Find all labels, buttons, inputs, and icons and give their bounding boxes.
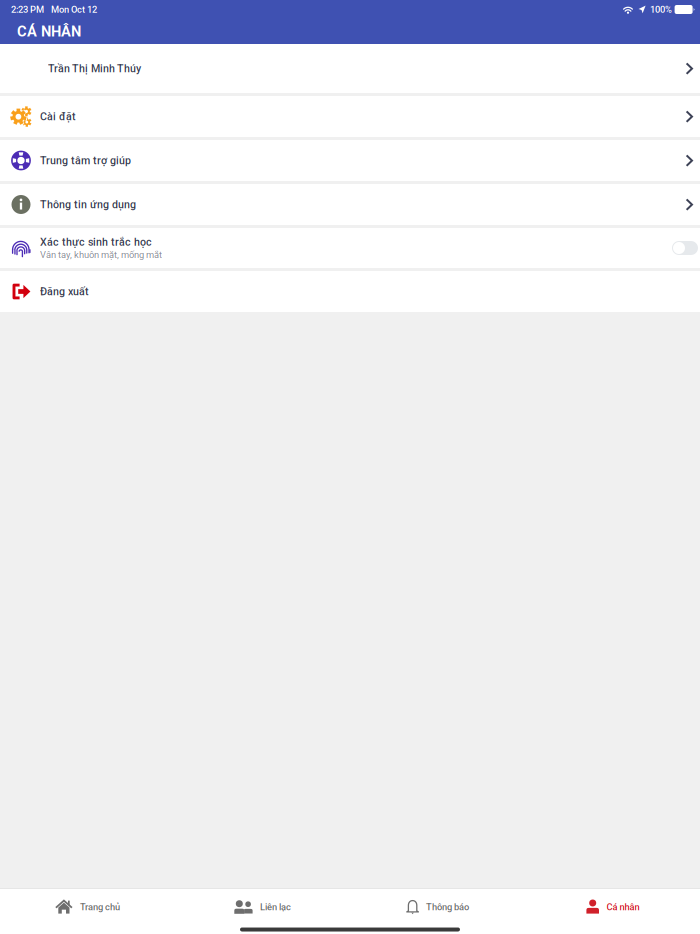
staticText: Vân tay, khuôn mặt, mống mắt: [40, 249, 162, 260]
staticText: Cài đặt: [40, 110, 76, 123]
staticText: Cá nhân: [606, 901, 639, 912]
button[interactable]: Trần Thị Minh Thúy: [0, 44, 700, 93]
button[interactable]: Trung tâm trợ giúp: [0, 140, 700, 181]
staticText: CÁ NHÂN: [17, 23, 81, 40]
button[interactable]: Trang chủ: [0, 889, 175, 925]
staticText: Liên lạc: [260, 901, 291, 912]
button[interactable]: Liên lạc: [175, 889, 350, 925]
button[interactable]: Xác thực sinh trắc học: [0, 228, 700, 268]
staticText: Xác thực sinh trắc học: [40, 236, 152, 248]
staticText: 100%: [650, 4, 672, 15]
button[interactable]: Cá nhân: [525, 889, 700, 925]
staticText: Thông báo: [426, 901, 469, 912]
staticText: Mon Oct 12: [51, 4, 97, 15]
button[interactable]: Thông báo: [350, 889, 525, 925]
staticText: Đăng xuất: [40, 285, 89, 298]
button[interactable]: Cài đặt: [0, 96, 700, 137]
button[interactable]: Đăng xuất: [0, 271, 700, 312]
staticText: Trang chủ: [80, 901, 120, 912]
staticText: Trần Thị Minh Thúy: [48, 62, 141, 75]
staticText: Trung tâm trợ giúp: [40, 154, 131, 167]
staticText: Thông tin ứng dụng: [40, 198, 136, 211]
staticText: 2:23 PM: [11, 4, 44, 15]
button[interactable]: Thông tin ứng dụng: [0, 184, 700, 225]
